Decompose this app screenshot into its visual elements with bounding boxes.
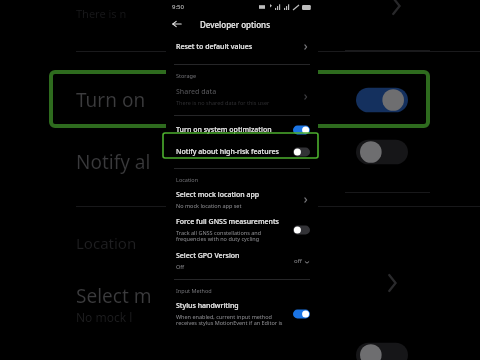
staticText: Notify al	[76, 149, 151, 175]
staticText: Developer options	[200, 19, 271, 30]
staticText: Select mock location app	[176, 190, 260, 200]
button[interactable]: Force full GNSS measurements	[166, 213, 318, 247]
button[interactable]: Back	[166, 13, 188, 35]
staticText: When enabled, current input method recei…	[176, 313, 287, 327]
staticText: Turn on	[76, 87, 146, 113]
button[interactable]: Stylus handwriting	[166, 297, 318, 331]
button[interactable]: Shared data	[166, 83, 318, 110]
staticText: Shared data	[176, 87, 217, 97]
staticText: Location	[176, 176, 199, 183]
staticText: Storage	[176, 72, 197, 79]
button[interactable]: Select mock location app	[166, 186, 318, 213]
staticText: Force full GNSS measurements	[176, 217, 279, 227]
staticText: There is n	[76, 6, 127, 21]
staticText: off	[294, 257, 302, 265]
button[interactable]: Select GPO Version	[166, 247, 318, 274]
staticText: Select m	[76, 283, 152, 309]
staticText: Notify about high-risk features	[176, 147, 279, 157]
staticText: Input Method	[176, 287, 212, 294]
staticText: No mock location app set	[176, 202, 242, 209]
staticText: No mock l	[76, 309, 133, 325]
button[interactable]: Notify about high-risk features	[166, 141, 318, 163]
staticText: Track all GNSS constellations and freque…	[176, 229, 287, 243]
button[interactable]: Turn on system optimization	[166, 119, 318, 141]
staticText: Turn on system optimization	[176, 125, 272, 135]
staticText: Select GPO Version	[176, 251, 240, 261]
staticText: Reset to default values	[176, 42, 253, 52]
staticText: There is no shared data for this user	[176, 99, 270, 106]
staticText: Location	[76, 233, 137, 253]
staticText: Stylus handwriting	[176, 301, 239, 311]
button[interactable]: Reset to default values	[166, 35, 318, 59]
staticText: Off	[176, 263, 185, 270]
staticText: 9:50	[172, 3, 184, 11]
